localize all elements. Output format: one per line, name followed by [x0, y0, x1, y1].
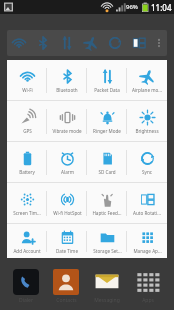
staticText: Dialer — [19, 297, 33, 304]
staticText: Battery — [19, 169, 35, 175]
staticText: Airplane mo... — [132, 87, 162, 93]
staticText: Packet Data — [94, 87, 120, 93]
staticText: 11:04 — [151, 2, 172, 13]
button[interactable]: Screen Tim... — [7, 183, 47, 223]
staticText: GPS — [23, 128, 32, 134]
button[interactable]: GPS — [7, 101, 47, 141]
staticText: Bluetooth — [56, 87, 78, 93]
button[interactable]: Battery — [7, 142, 47, 182]
staticText: Vibrate mode — [52, 128, 82, 134]
button[interactable]: More settings — [151, 30, 167, 56]
staticText: Wi-Fi — [22, 87, 33, 93]
button[interactable]: Bluetooth — [31, 30, 55, 56]
button[interactable]: Vibrate mode — [47, 101, 87, 141]
button[interactable]: Sync — [127, 142, 167, 182]
button[interactable]: Auto Rotati... — [127, 183, 167, 223]
staticText: Alarm — [61, 169, 74, 175]
button[interactable]: Dialer — [6, 262, 46, 310]
button[interactable]: Haptic Feed... — [87, 183, 127, 223]
button[interactable]: Bluetooth — [47, 60, 87, 100]
button[interactable]: Wi-fi HotSpot — [47, 183, 87, 223]
staticText: Haptic Feed... — [92, 210, 122, 216]
staticText: Sync — [142, 169, 152, 175]
button[interactable]: Sync — [103, 30, 127, 56]
button[interactable]: Contacts — [46, 262, 86, 310]
button[interactable]: Wi-Fi — [7, 30, 31, 56]
button[interactable]: Airplane mo... — [127, 60, 167, 100]
button[interactable]: Apps — [127, 262, 168, 310]
staticText: Auto Rotati... — [133, 210, 161, 216]
button[interactable]: Date Time — [47, 224, 87, 258]
staticText: Contacts — [56, 297, 77, 304]
staticText: Ringer Mode — [93, 128, 121, 134]
staticText: 96% — [126, 3, 138, 11]
button[interactable]: Messaging — [86, 262, 127, 310]
button[interactable]: Manage Ap... — [127, 224, 167, 258]
staticText: Manage Ap... — [133, 248, 162, 254]
staticText: SD Card — [98, 169, 116, 175]
button[interactable]: Ringer Mode — [87, 101, 127, 141]
staticText: Brightness — [135, 128, 159, 134]
button[interactable]: Storage Set... — [87, 224, 127, 258]
button[interactable]: Add Account — [7, 224, 47, 258]
staticText: Add Account — [13, 248, 41, 254]
button[interactable]: Alarm — [47, 142, 87, 182]
staticText: Messaging — [94, 297, 120, 304]
button[interactable]: Brightness — [127, 101, 167, 141]
staticText: Date Time — [56, 248, 78, 254]
button[interactable]: Packet Data — [87, 60, 127, 100]
staticText: Storage Set... — [93, 248, 122, 254]
button[interactable]: Multi window — [127, 30, 151, 56]
staticText: Screen Tim... — [13, 210, 41, 216]
button[interactable]: Airplane mode — [79, 30, 103, 56]
button[interactable]: Packet Data — [55, 30, 79, 56]
button[interactable]: Wi-Fi — [7, 60, 47, 100]
button[interactable]: SD Card — [87, 142, 127, 182]
staticText: Apps — [142, 297, 154, 304]
staticText: Wi-fi HotSpot — [53, 210, 82, 216]
